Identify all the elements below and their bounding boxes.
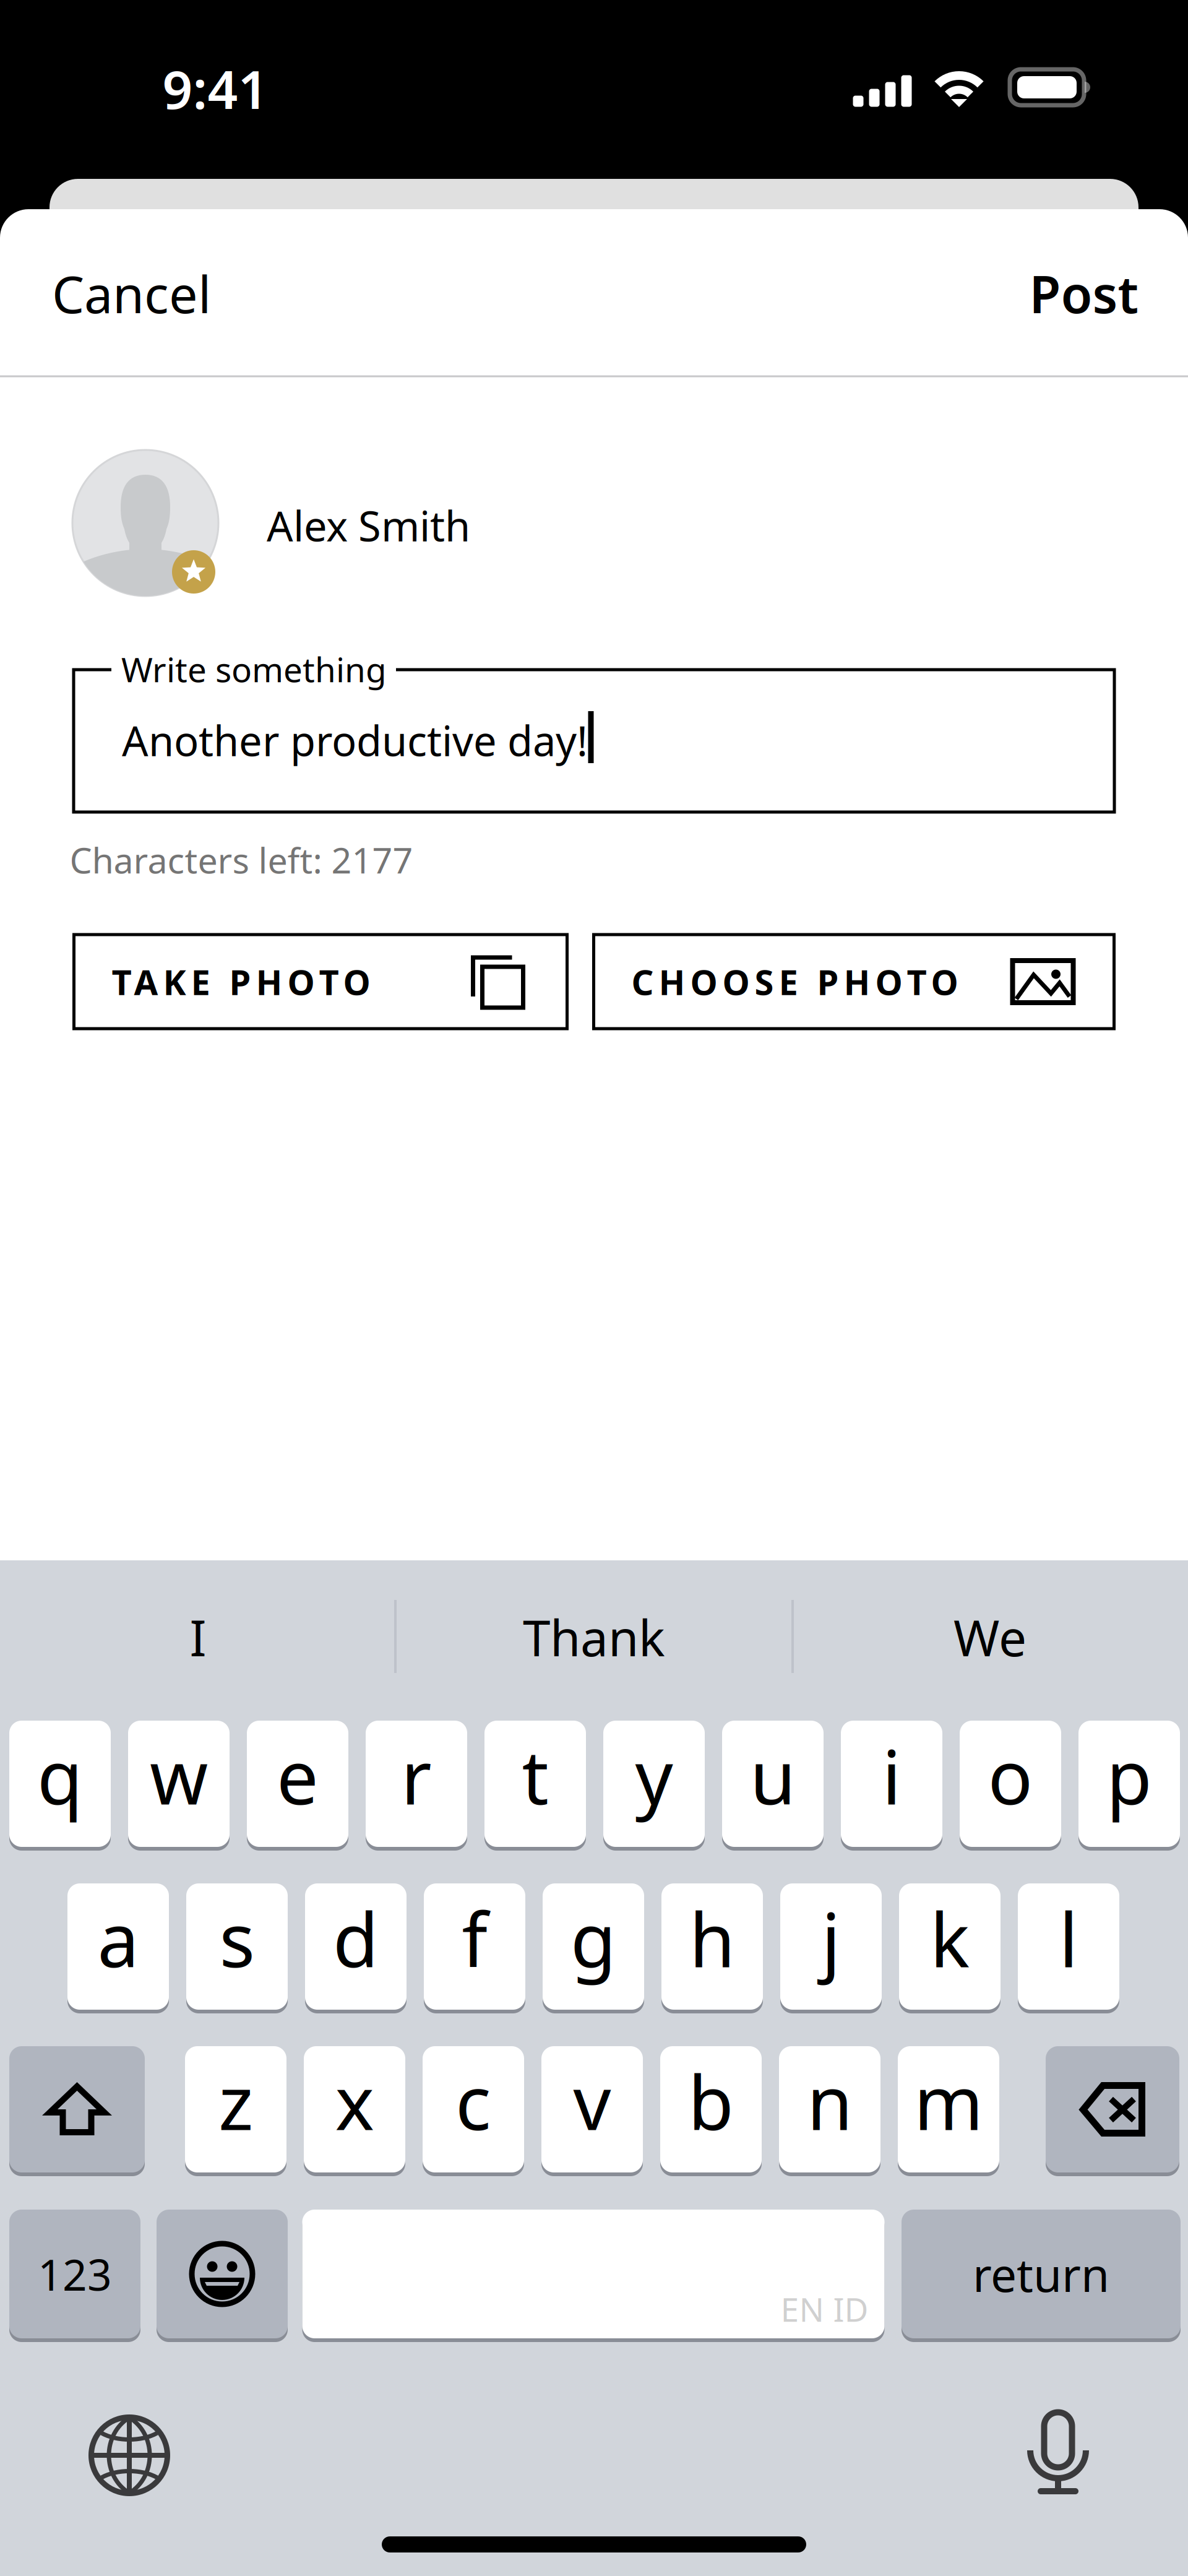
staticText: a	[97, 1889, 139, 1988]
staticText: y	[635, 1726, 673, 1825]
button[interactable]: x	[304, 2046, 405, 2172]
button[interactable]: Return	[902, 2210, 1181, 2338]
button[interactable]: u	[722, 1721, 824, 1847]
button[interactable]: q	[9, 1721, 111, 1847]
button[interactable]: o	[960, 1721, 1061, 1847]
staticText: x	[335, 2052, 374, 2151]
staticText: n	[807, 2052, 853, 2151]
staticText: f	[462, 1889, 487, 1988]
button[interactable]: v	[541, 2046, 643, 2172]
staticText: 123	[38, 2245, 112, 2302]
button[interactable]: m	[898, 2046, 999, 2172]
staticText: Alex Smith	[267, 498, 470, 553]
button[interactable]: We	[804, 1591, 1176, 1683]
staticText: w	[150, 1726, 208, 1825]
staticText: CHOOSE PHOTO	[631, 959, 958, 1005]
button[interactable]: l	[1018, 1883, 1119, 2010]
staticText: TAKE PHOTO	[112, 959, 370, 1005]
button[interactable]: j	[780, 1883, 882, 2010]
button[interactable]: e	[247, 1721, 348, 1847]
button[interactable]: w	[128, 1721, 230, 1847]
staticText: r	[401, 1726, 432, 1825]
staticText: Thank	[523, 1604, 665, 1670]
staticText: i	[882, 1726, 901, 1825]
button[interactable]: Delete	[1046, 2046, 1179, 2172]
staticText: k	[930, 1889, 970, 1988]
button[interactable]: Post	[978, 241, 1186, 346]
staticText: We	[953, 1604, 1027, 1670]
staticText: Cancel	[52, 259, 211, 327]
button[interactable]: CHOOSE PHOTO	[594, 935, 1114, 1029]
staticText: z	[218, 2052, 253, 2151]
button[interactable]: h	[661, 1883, 763, 2010]
staticText: 9:41	[162, 53, 268, 124]
button[interactable]: Numbers	[9, 2210, 140, 2338]
button[interactable]: Switch keyboard	[88, 2414, 170, 2496]
button[interactable]: s	[186, 1883, 288, 2010]
button[interactable]: Dictate	[1030, 2409, 1087, 2496]
button[interactable]: f	[424, 1883, 525, 2010]
staticText: d	[333, 1889, 379, 1988]
staticText: u	[750, 1726, 796, 1825]
button[interactable]: I	[12, 1591, 384, 1683]
button[interactable]: p	[1078, 1721, 1180, 1847]
button[interactable]: b	[660, 2046, 762, 2172]
button[interactable]: r	[366, 1721, 467, 1847]
button[interactable]: n	[779, 2046, 880, 2172]
staticText: Another productive day!	[122, 713, 588, 768]
button[interactable]: g	[543, 1883, 644, 2010]
staticText: m	[914, 2052, 983, 2151]
button[interactable]: k	[899, 1883, 1001, 2010]
staticText: j	[821, 1889, 841, 1988]
staticText: b	[688, 2052, 734, 2151]
button[interactable]: Thank	[408, 1591, 780, 1683]
button[interactable]: TAKE PHOTO	[74, 935, 567, 1029]
staticText: c	[455, 2052, 491, 2151]
staticText: Write something	[121, 647, 387, 692]
staticText: s	[219, 1889, 255, 1988]
staticText: p	[1106, 1726, 1152, 1825]
button[interactable]: c	[423, 2046, 524, 2172]
button[interactable]: y	[603, 1721, 705, 1847]
button[interactable]: d	[305, 1883, 407, 2010]
button[interactable]: Shift	[9, 2046, 145, 2172]
staticText: Post	[1029, 259, 1139, 327]
staticText: o	[988, 1726, 1033, 1825]
staticText: e	[277, 1726, 319, 1825]
staticText: Characters left: 2177	[70, 836, 413, 883]
button[interactable]: t	[484, 1721, 586, 1847]
staticText: t	[522, 1726, 549, 1825]
staticText: EN ID	[781, 2287, 868, 2331]
button[interactable]: z	[185, 2046, 286, 2172]
staticText: l	[1059, 1889, 1078, 1988]
staticText: v	[573, 2052, 611, 2151]
staticText: g	[570, 1889, 616, 1988]
button[interactable]: a	[67, 1883, 169, 2010]
staticText: h	[689, 1889, 735, 1988]
button[interactable]: Emoji	[157, 2210, 288, 2338]
button[interactable]: Cancel	[0, 241, 238, 346]
button[interactable]: i	[841, 1721, 942, 1847]
staticText: I	[190, 1604, 206, 1670]
staticText: q	[37, 1726, 83, 1825]
staticText: return	[973, 2243, 1109, 2305]
button[interactable]: space	[302, 2210, 885, 2338]
